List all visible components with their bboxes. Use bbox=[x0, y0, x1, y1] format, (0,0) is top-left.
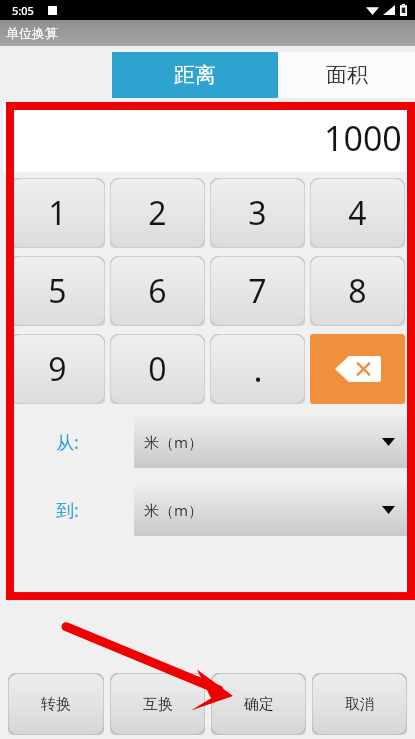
staticText: 米（m） bbox=[144, 500, 204, 520]
staticText: 1 bbox=[48, 191, 67, 235]
button[interactable]: 米（m） bbox=[134, 484, 407, 536]
button[interactable]: 取消 bbox=[312, 673, 407, 735]
staticText: 单位换算 bbox=[6, 25, 58, 41]
staticText: 1000 bbox=[324, 115, 402, 161]
button[interactable]: 6 bbox=[110, 256, 205, 326]
button[interactable]: . bbox=[210, 334, 305, 404]
staticText: 5 bbox=[48, 269, 67, 313]
button[interactable]: 面积 bbox=[278, 52, 415, 98]
button[interactable]: 确定 bbox=[211, 673, 306, 735]
button[interactable]: 距离 bbox=[112, 52, 278, 98]
staticText: 距离 bbox=[174, 62, 216, 88]
button[interactable]: 2 bbox=[110, 178, 205, 248]
button[interactable]: 4 bbox=[310, 178, 405, 248]
button[interactable]: 3 bbox=[210, 178, 305, 248]
button[interactable]: 互换 bbox=[110, 673, 205, 735]
button[interactable]: 米（m） bbox=[134, 416, 407, 468]
button[interactable]: 5 bbox=[10, 256, 105, 326]
button[interactable]: Backspace bbox=[310, 334, 405, 404]
staticText: 6 bbox=[148, 269, 167, 313]
staticText: 3 bbox=[248, 191, 267, 235]
staticText: 2 bbox=[148, 191, 167, 235]
button[interactable]: 1 bbox=[10, 178, 105, 248]
staticText: 互换 bbox=[143, 695, 173, 714]
staticText: 从: bbox=[56, 430, 79, 455]
staticText: 4 bbox=[348, 191, 367, 235]
staticText: 面积 bbox=[326, 62, 368, 88]
staticText: 转换 bbox=[41, 695, 71, 714]
staticText: 取消 bbox=[345, 695, 375, 714]
staticText: 确定 bbox=[244, 695, 274, 714]
button[interactable]: 9 bbox=[10, 334, 105, 404]
button[interactable]: 7 bbox=[210, 256, 305, 326]
button[interactable]: 转换 bbox=[8, 673, 104, 735]
button[interactable]: 0 bbox=[110, 334, 205, 404]
staticText: 0 bbox=[148, 347, 167, 391]
button[interactable]: 8 bbox=[310, 256, 405, 326]
staticText: 7 bbox=[248, 269, 267, 313]
button[interactable]: 1000 bbox=[3, 104, 412, 172]
staticText: 米（m） bbox=[144, 432, 204, 452]
staticText: 5:05 bbox=[12, 3, 34, 18]
staticText: 9 bbox=[48, 347, 67, 391]
staticText: 到: bbox=[56, 498, 79, 523]
staticText: 8 bbox=[348, 269, 367, 313]
staticText: . bbox=[253, 346, 263, 392]
